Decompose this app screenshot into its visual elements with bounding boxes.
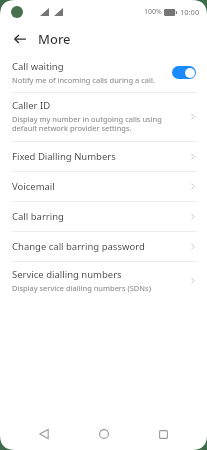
- staticText: Call barring: [12, 210, 189, 223]
- staticText: More: [38, 30, 71, 48]
- staticText: Voicemail: [12, 180, 189, 193]
- button[interactable]: Change call barring password: [0, 232, 207, 261]
- staticText: Service dialling numbers: [12, 268, 122, 281]
- button[interactable]: Home: [89, 419, 119, 449]
- staticText: 10:00: [180, 7, 200, 17]
- staticText: Display service dialling numbers (SDNs): [12, 283, 151, 293]
- button[interactable]: Back: [29, 419, 59, 449]
- button[interactable]: Call waiting toggle: [172, 66, 196, 79]
- staticText: 100%: [144, 7, 162, 17]
- button[interactable]: Service dialling numbers: [0, 262, 207, 300]
- staticText: Caller ID: [12, 99, 51, 112]
- staticText: Fixed Dialling Numbers: [12, 150, 189, 163]
- staticText: Call waiting: [12, 60, 64, 73]
- button[interactable]: Voicemail: [0, 172, 207, 201]
- button[interactable]: Fixed Dialling Numbers: [0, 142, 207, 171]
- button[interactable]: Back: [9, 28, 31, 50]
- button[interactable]: Call waiting: [0, 54, 207, 92]
- button[interactable]: Recent apps: [148, 419, 178, 449]
- button[interactable]: Call barring: [0, 202, 207, 231]
- button[interactable]: Caller ID: [0, 93, 207, 141]
- staticText: Change call barring password: [12, 240, 189, 253]
- staticText: Notify me of incoming calls during a cal…: [12, 75, 155, 85]
- staticText: Display my number in outgoing calls usin…: [12, 114, 183, 134]
